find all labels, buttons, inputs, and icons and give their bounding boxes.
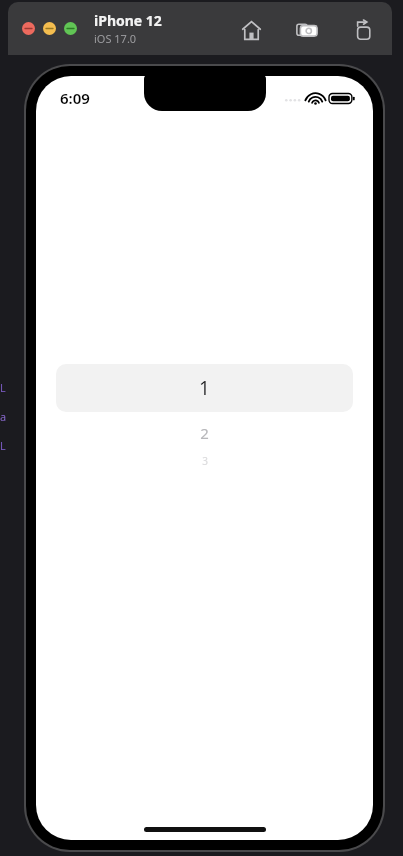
button[interactable]: Window control [22, 22, 35, 35]
staticText: iOS 17.0 [94, 31, 137, 46]
button[interactable]: Rotate [348, 15, 378, 45]
staticText: L [0, 438, 6, 453]
button[interactable]: Window control [64, 22, 77, 35]
staticText: 6:09 [60, 88, 90, 108]
staticText: L [0, 380, 6, 395]
button[interactable]: Home [236, 15, 266, 45]
staticText: iPhone 12 [94, 11, 162, 30]
button[interactable]: 1 [56, 364, 353, 412]
staticText: a [0, 409, 7, 424]
staticText: 1 [199, 375, 210, 401]
button[interactable]: 2 [36, 422, 373, 444]
button[interactable]: Window control [43, 22, 56, 35]
button[interactable]: Screenshot [292, 15, 322, 45]
staticText: 2 [200, 423, 209, 443]
staticText: 3 [202, 454, 208, 468]
